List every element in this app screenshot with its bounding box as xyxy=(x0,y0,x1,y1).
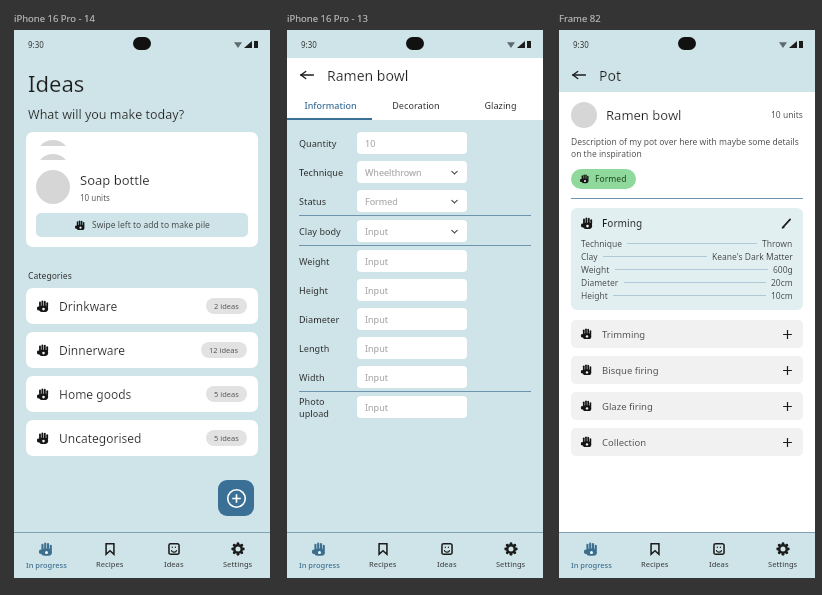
staticText: iPhone 16 Pro - 13 xyxy=(287,12,368,25)
staticText: Ramen bowl xyxy=(606,106,682,124)
button[interactable]: Clay body xyxy=(299,216,531,245)
button[interactable]: Weight xyxy=(299,246,531,275)
button[interactable]: Trimming xyxy=(571,320,803,348)
staticText: Glazing xyxy=(484,99,517,111)
staticText: 10 units xyxy=(771,109,803,121)
staticText: Input xyxy=(365,313,388,325)
button[interactable]: In progress xyxy=(14,533,78,578)
button[interactable]: Settings xyxy=(479,533,543,578)
button[interactable]: Cat bowls xyxy=(26,146,258,188)
button[interactable]: Settings xyxy=(206,533,270,578)
staticText: Ideas xyxy=(164,559,184,569)
button[interactable]: Information xyxy=(287,92,373,118)
staticText: 9:30 xyxy=(301,39,317,50)
staticText: Frame 82 xyxy=(559,12,601,25)
button[interactable]: Add idea xyxy=(218,480,254,516)
staticText: Home goods xyxy=(59,386,132,402)
button[interactable]: Recipes xyxy=(623,533,687,578)
staticText: Settings xyxy=(223,559,253,569)
button[interactable]: Settings xyxy=(751,533,815,578)
staticText: Clay xyxy=(581,251,598,263)
button[interactable]: Technique xyxy=(299,157,531,186)
staticText: Input xyxy=(365,401,388,413)
staticText: Quantity xyxy=(299,137,357,149)
button[interactable]: Recipes xyxy=(78,533,142,578)
button[interactable]: Length xyxy=(299,333,531,362)
staticText: 2 ideas xyxy=(214,301,239,311)
other: Back xyxy=(571,67,587,83)
staticText: Formed xyxy=(365,195,398,207)
other: Add Trimming xyxy=(782,329,793,340)
staticText: Glaze firing xyxy=(602,400,653,413)
button[interactable]: In progress xyxy=(559,533,623,578)
other: Back xyxy=(299,67,315,83)
staticText: Photo upload xyxy=(299,395,357,419)
staticText: Ideas xyxy=(709,559,729,569)
staticText: 5 ideas xyxy=(214,433,239,443)
staticText: Ideas xyxy=(437,559,457,569)
staticText: iPhone 16 Pro - 14 xyxy=(14,12,95,25)
button[interactable]: Width xyxy=(299,362,531,391)
staticText: Technique xyxy=(299,166,357,178)
staticText: Input xyxy=(365,255,388,267)
staticText: Decoration xyxy=(392,99,440,111)
staticText: 12 ideas xyxy=(209,345,239,355)
button[interactable]: Glazing xyxy=(458,92,543,118)
staticText: Height xyxy=(581,290,608,302)
staticText: Recipes xyxy=(369,559,397,569)
staticText: Technique xyxy=(581,238,622,250)
other: Add Bisque firing xyxy=(782,365,793,376)
staticText: What will you make today? xyxy=(28,106,185,123)
button[interactable]: Bisque firing xyxy=(571,356,803,384)
button[interactable]: Forming xyxy=(571,208,803,310)
button[interactable]: Height xyxy=(299,275,531,304)
staticText: Thrown xyxy=(762,238,793,250)
staticText: 9:30 xyxy=(573,39,589,50)
button[interactable]: Quantity xyxy=(299,128,531,157)
staticText: 10 units xyxy=(80,192,110,203)
button[interactable]: Diameter xyxy=(299,304,531,333)
staticText: Recipes xyxy=(641,559,669,569)
button[interactable]: Status xyxy=(299,186,531,215)
button[interactable]: Ideas xyxy=(142,533,206,578)
button[interactable]: Decoration xyxy=(373,92,458,118)
button[interactable]: Edit xyxy=(780,217,793,230)
button[interactable]: Soap bottle xyxy=(26,160,258,247)
staticText: Input xyxy=(365,284,388,296)
staticText: Pot xyxy=(599,66,621,85)
button[interactable]: Back xyxy=(571,67,587,83)
button[interactable]: Recipes xyxy=(351,533,415,578)
staticText: Swipe left to add to make pile xyxy=(92,219,210,231)
staticText: Uncategorised xyxy=(59,430,142,446)
button[interactable]: Ideas xyxy=(415,533,479,578)
staticText: In progress xyxy=(26,560,67,570)
staticText: Information xyxy=(304,99,357,111)
staticText: Collection xyxy=(602,436,647,449)
staticText: Drinkware xyxy=(59,298,118,314)
other: Add Collection xyxy=(782,437,793,448)
button[interactable]: Ideas xyxy=(687,533,751,578)
button[interactable]: Back xyxy=(299,67,315,83)
button[interactable]: Home goods xyxy=(26,376,258,412)
button[interactable]: In progress xyxy=(287,533,351,578)
staticText: Dinnerware xyxy=(59,342,126,358)
staticText: Settings xyxy=(496,559,526,569)
button[interactable]: Formed xyxy=(571,169,636,189)
button[interactable]: Photo upload xyxy=(299,392,531,421)
staticText: Trimming xyxy=(602,328,646,341)
staticText: Input xyxy=(365,371,388,383)
staticText: Formed xyxy=(595,173,627,185)
staticText: 600g xyxy=(773,264,793,276)
button[interactable]: Collection xyxy=(571,428,803,456)
staticText: Input xyxy=(365,342,388,354)
button[interactable]: Incense holder xyxy=(26,132,258,174)
staticText: Wheelthrown xyxy=(365,166,422,178)
staticText: Length xyxy=(299,342,357,354)
staticText: 5 ideas xyxy=(214,389,239,399)
other: Add Glaze firing xyxy=(782,401,793,412)
button[interactable]: Swipe left to add to make pile xyxy=(36,213,248,237)
button[interactable]: Dinnerware xyxy=(26,332,258,368)
button[interactable]: Glaze firing xyxy=(571,392,803,420)
button[interactable]: Drinkware xyxy=(26,288,258,324)
button[interactable]: Uncategorised xyxy=(26,420,258,456)
